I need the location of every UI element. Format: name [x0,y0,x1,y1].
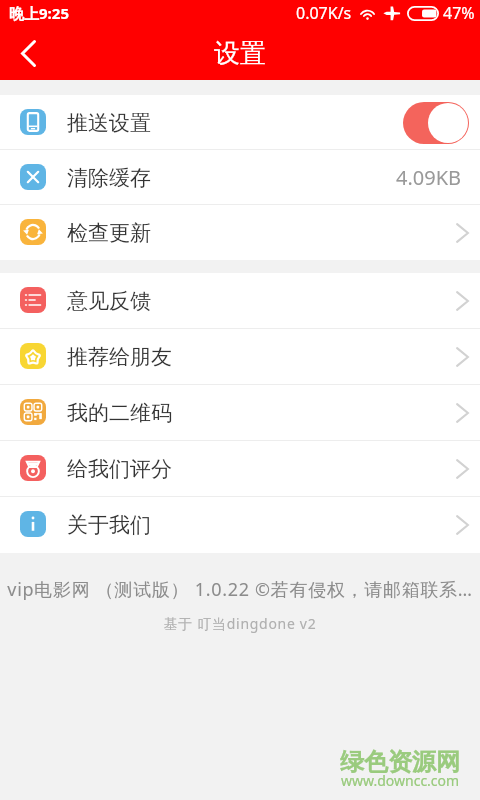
button[interactable]: Back [0,26,56,80]
button[interactable]: 推荐给朋友 [0,329,480,385]
button[interactable]: 清除缓存 [0,150,480,205]
staticText: 意见反馈 [67,288,151,314]
staticText: 设置 [214,37,266,70]
button[interactable]: 意见反馈 [0,273,480,329]
staticText: 晚上9:25 [9,3,69,23]
staticText: 关于我们 [67,512,151,538]
button[interactable]: 检查更新 [0,205,480,260]
staticText: 绿色资源网 [340,747,460,777]
button[interactable]: 给我们评分 [0,441,480,497]
staticText: 推荐给朋友 [67,344,172,370]
staticText: 推送设置 [67,110,151,136]
button[interactable]: 我的二维码 [0,385,480,441]
button[interactable]: 关于我们 [0,497,480,553]
staticText: 给我们评分 [67,456,172,482]
button[interactable] [403,102,469,144]
staticText: 基于 叮当dingdone v2 [0,614,480,633]
staticText: 我的二维码 [67,400,172,426]
staticText: vip电影网 （测试版） 1.0.22 ©若有侵权，请邮箱联系… [0,577,480,602]
button[interactable]: 推送设置 [0,95,480,150]
staticText: 检查更新 [67,220,151,246]
staticText: 清除缓存 [67,165,151,191]
staticText: www.downcc.com [341,771,460,790]
staticText: 47% [443,2,475,24]
staticText: 0.07K/s [296,2,352,24]
staticText: 4.09KB [396,164,462,191]
